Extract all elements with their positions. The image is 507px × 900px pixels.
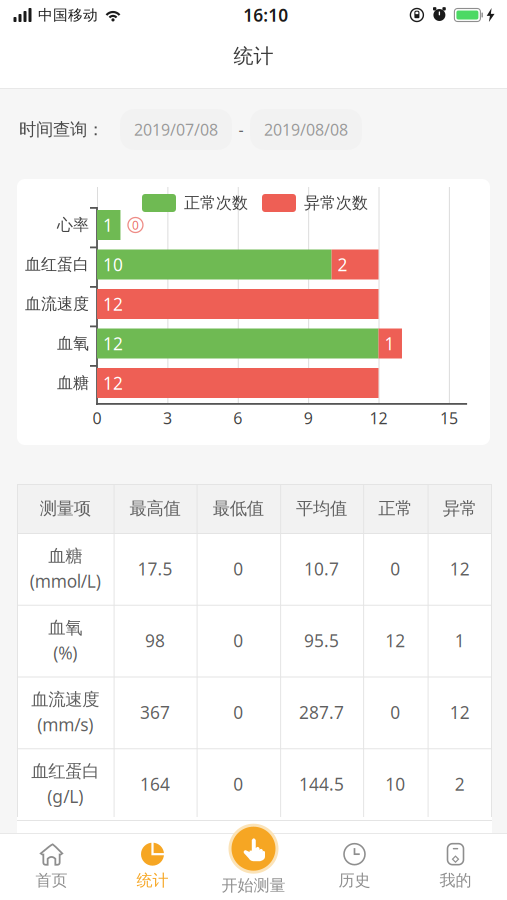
staticText: 144.5 bbox=[299, 773, 344, 796]
staticText: 最高值 bbox=[129, 498, 180, 519]
staticText: 正常次数 bbox=[184, 193, 248, 213]
staticText: 1 bbox=[384, 332, 394, 355]
staticText: 最低值 bbox=[213, 498, 264, 519]
staticText: (mmol/L) bbox=[30, 569, 101, 592]
staticText: 血流速度 bbox=[25, 294, 89, 314]
staticText: 0 bbox=[233, 701, 243, 724]
staticText: 血糖 bbox=[57, 373, 89, 393]
staticText: 血氧 bbox=[48, 617, 82, 638]
staticText: 2019/08/08 bbox=[264, 119, 348, 140]
staticText: 首页 bbox=[35, 871, 67, 890]
staticText: 15 bbox=[440, 407, 458, 429]
staticText: 12 bbox=[103, 332, 123, 355]
staticText: 0 bbox=[92, 407, 101, 429]
staticText: 12 bbox=[103, 371, 123, 394]
staticText: 测量项 bbox=[40, 498, 91, 519]
staticText: 3 bbox=[163, 407, 172, 429]
staticText: 0 bbox=[233, 629, 243, 652]
button[interactable]: 统计 bbox=[102, 833, 203, 900]
staticText: 血红蛋白 bbox=[31, 760, 99, 782]
staticText: 心率 bbox=[57, 215, 89, 235]
staticText: 开始测量 bbox=[221, 876, 285, 895]
button[interactable]: 2019/07/08 bbox=[120, 109, 232, 150]
staticText: 10 bbox=[385, 773, 405, 796]
button[interactable]: 历史 bbox=[304, 833, 405, 900]
staticText: 16:10 bbox=[243, 3, 288, 26]
staticText: 0 bbox=[233, 773, 243, 796]
staticText: 98 bbox=[145, 629, 165, 652]
staticText: 10.7 bbox=[304, 557, 339, 580]
staticText: 2 bbox=[455, 773, 465, 796]
staticText: 2019/07/08 bbox=[134, 119, 218, 140]
staticText: 血流速度 bbox=[31, 689, 99, 710]
staticText: 历史 bbox=[338, 871, 370, 890]
staticText: 12 bbox=[385, 629, 405, 652]
staticText: 6 bbox=[233, 407, 242, 429]
button[interactable]: 我的 bbox=[405, 833, 506, 900]
staticText: 12 bbox=[103, 292, 123, 315]
staticText: 中国移动 bbox=[38, 6, 98, 24]
staticText: 1 bbox=[103, 213, 113, 236]
staticText: 我的 bbox=[439, 871, 471, 890]
staticText: 10 bbox=[103, 253, 123, 276]
staticText: 血糖 bbox=[48, 545, 82, 566]
staticText: 0 bbox=[390, 557, 400, 580]
staticText: 12 bbox=[450, 557, 470, 580]
staticText: 367 bbox=[140, 701, 170, 724]
button[interactable]: 开始测量 bbox=[203, 823, 304, 896]
staticText: (%) bbox=[53, 641, 77, 664]
staticText: 异常 bbox=[443, 498, 477, 519]
staticText: 异常次数 bbox=[304, 193, 368, 213]
staticText: 287.7 bbox=[299, 701, 344, 724]
staticText: 2 bbox=[338, 253, 348, 276]
staticText: 血红蛋白 bbox=[25, 255, 89, 274]
staticText: 1 bbox=[455, 629, 465, 652]
staticText: 时间查询： bbox=[19, 119, 104, 140]
staticText: 平均值 bbox=[296, 498, 347, 519]
staticText: 164 bbox=[140, 773, 170, 796]
staticText: (mm/s) bbox=[37, 713, 93, 736]
staticText: 12 bbox=[450, 701, 470, 724]
staticText: 12 bbox=[369, 407, 387, 429]
staticText: (g/L) bbox=[47, 785, 83, 808]
staticText: 正常 bbox=[378, 498, 412, 519]
button[interactable]: 2019/08/08 bbox=[250, 109, 362, 150]
button[interactable]: 首页 bbox=[1, 833, 102, 900]
staticText: 血氧 bbox=[57, 334, 89, 353]
staticText: 统计 bbox=[233, 44, 273, 68]
staticText: 95.5 bbox=[304, 629, 339, 652]
staticText: 0 bbox=[132, 217, 139, 233]
staticText: 0 bbox=[390, 701, 400, 724]
staticText: 统计 bbox=[136, 871, 168, 890]
staticText: - bbox=[238, 119, 243, 140]
staticText: 0 bbox=[233, 557, 243, 580]
staticText: 17.5 bbox=[137, 557, 172, 580]
staticText: 9 bbox=[304, 407, 313, 429]
